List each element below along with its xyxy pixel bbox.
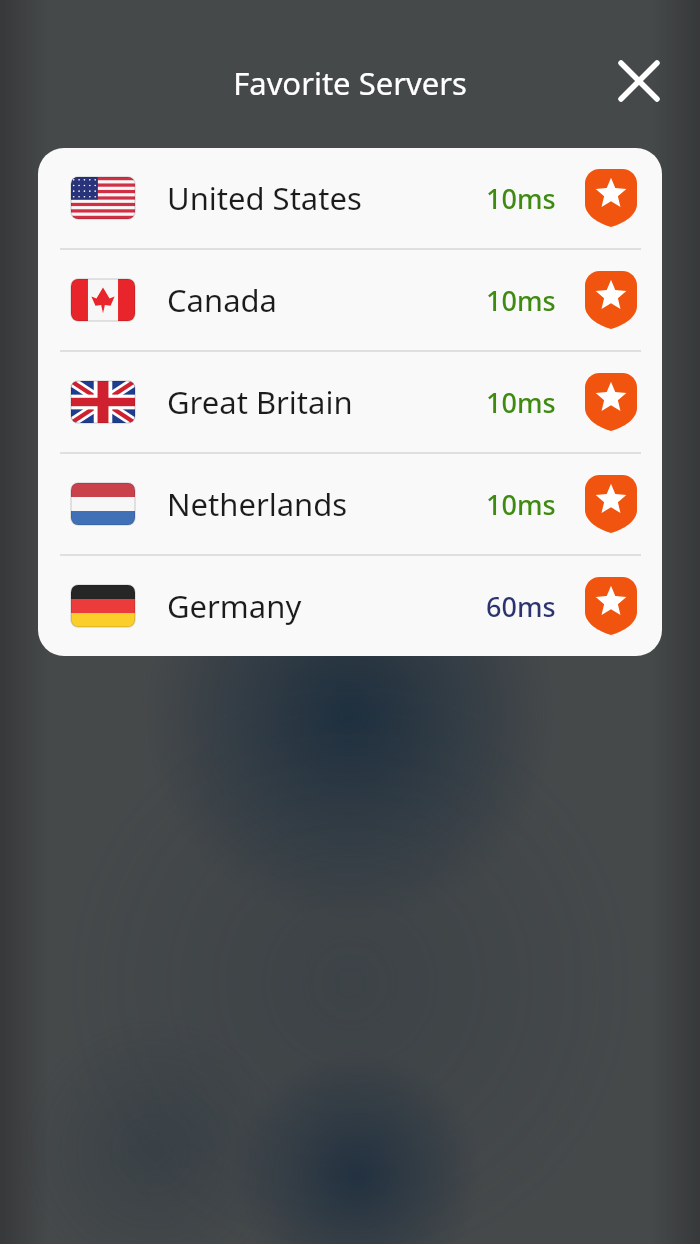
button[interactable]: Canada	[38, 250, 662, 350]
button[interactable]: Favorite Canada	[582, 271, 640, 329]
staticText: Canada	[167, 279, 486, 321]
staticText: 60ms	[486, 588, 556, 625]
button[interactable]: United States	[38, 148, 662, 248]
button[interactable]: Great Britain	[38, 352, 662, 452]
button[interactable]: Favorite Great Britain	[582, 373, 640, 431]
staticText: United States	[167, 177, 486, 219]
button[interactable]: Favorite United States	[582, 169, 640, 227]
button[interactable]: Favorite Netherlands	[582, 475, 640, 533]
button[interactable]: Netherlands	[38, 454, 662, 554]
button[interactable]: Close	[605, 47, 673, 115]
staticText: 10ms	[486, 282, 556, 319]
staticText: Favorite Servers	[100, 62, 600, 104]
button[interactable]: Germany	[38, 556, 662, 656]
staticText: 10ms	[486, 486, 556, 523]
staticText: Great Britain	[167, 381, 486, 423]
staticText: Netherlands	[167, 483, 486, 525]
staticText: 10ms	[486, 384, 556, 421]
button[interactable]: Favorite Germany	[582, 577, 640, 635]
staticText: Germany	[167, 585, 486, 627]
staticText: 10ms	[486, 180, 556, 217]
